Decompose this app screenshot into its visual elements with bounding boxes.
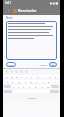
staticText: . [47, 90, 48, 93]
staticText: b [35, 85, 37, 88]
staticText: j [43, 80, 44, 83]
staticText: u [37, 75, 39, 78]
staticText: n [41, 85, 43, 88]
staticText: v [29, 85, 31, 88]
staticText: a [7, 80, 9, 83]
button[interactable]: v [27, 85, 33, 88]
button[interactable]: b [33, 85, 39, 88]
button[interactable]: l [52, 80, 58, 83]
button[interactable]: n [39, 85, 45, 88]
button[interactable]: r [19, 75, 24, 78]
button[interactable]: x [16, 85, 21, 88]
button[interactable]: Back [5, 7, 12, 14]
button[interactable]: y [29, 75, 35, 78]
staticText: p [55, 75, 57, 78]
staticText: r [21, 75, 23, 78]
button[interactable]: q [4, 75, 9, 78]
staticText: t [26, 75, 27, 78]
staticText: k [48, 80, 50, 83]
button[interactable]: h [34, 80, 40, 83]
staticText: i [44, 75, 45, 78]
staticText: 0/200 [40, 63, 47, 66]
button[interactable]: z [11, 85, 16, 88]
button[interactable]: o [47, 75, 53, 78]
staticText: d [18, 80, 20, 83]
button[interactable]: e [14, 75, 19, 78]
button[interactable] [6, 21, 57, 60]
button[interactable]: u [35, 75, 41, 78]
button[interactable]: Save [49, 62, 57, 67]
button[interactable]: j [40, 80, 46, 83]
button[interactable]: k [46, 80, 52, 83]
button[interactable]: Toolbar action [20, 70, 23, 73]
button[interactable]: m [45, 85, 51, 88]
button[interactable]: Cancel [6, 62, 16, 67]
staticText: z [13, 85, 15, 88]
staticText: m [47, 85, 50, 88]
staticText: Save [50, 63, 56, 66]
button[interactable]: c [21, 85, 27, 88]
staticText: f [25, 80, 26, 83]
button[interactable]: t [24, 75, 29, 78]
staticText: Cancel [7, 63, 15, 66]
staticText: c [23, 85, 25, 88]
staticText: o [49, 75, 51, 78]
button[interactable]: g [28, 80, 34, 83]
staticText: x [18, 85, 20, 88]
button[interactable]: d [16, 80, 22, 83]
button[interactable]: Toolbar action [10, 70, 13, 73]
staticText: h [36, 80, 38, 83]
button[interactable]: i [41, 75, 47, 78]
staticText: e [16, 75, 18, 78]
button[interactable]: Toolbar action [25, 70, 28, 73]
staticText: Reminder [18, 8, 37, 13]
button[interactable]: Toolbar action [15, 70, 18, 73]
button[interactable]: p [53, 75, 59, 78]
staticText: Note [6, 16, 13, 20]
staticText: s [12, 80, 14, 83]
button[interactable]: a [5, 80, 10, 83]
button[interactable]: s [10, 80, 16, 83]
staticText: l [55, 80, 56, 83]
button[interactable]: Toolbar action [5, 70, 8, 73]
button[interactable]: w [9, 75, 14, 78]
staticText: g [30, 80, 32, 83]
staticText: q [6, 75, 8, 78]
staticText: y [31, 75, 33, 78]
button[interactable]: f [22, 80, 28, 83]
staticText: w [11, 75, 13, 78]
staticText: 9:41 [5, 1, 11, 5]
